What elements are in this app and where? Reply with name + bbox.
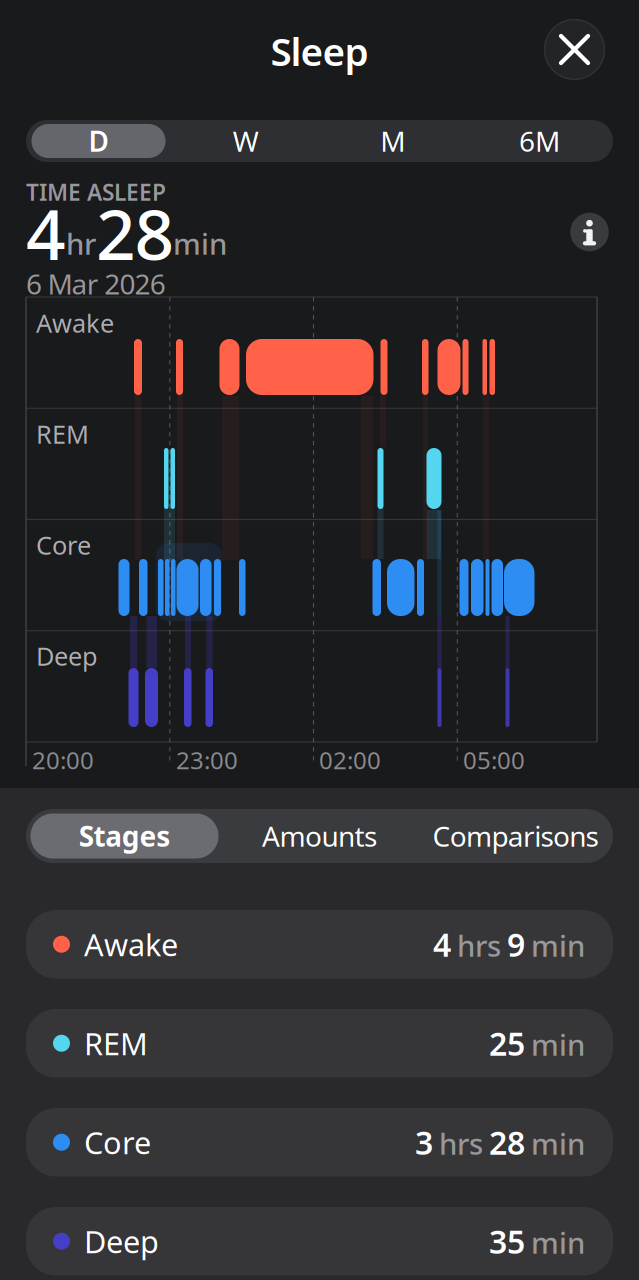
- button[interactable]: D: [28, 120, 168, 162]
- staticText: min: [531, 1025, 585, 1064]
- staticText: Comparisons: [432, 817, 598, 855]
- staticText: 23:00: [176, 744, 238, 776]
- staticText: Core: [36, 528, 91, 562]
- staticText: min: [531, 1223, 585, 1262]
- staticText: W: [233, 122, 259, 160]
- staticText: min: [531, 1124, 585, 1163]
- staticText: Amounts: [262, 817, 377, 855]
- staticText: 6M: [519, 122, 560, 160]
- button[interactable]: Info: [570, 213, 609, 251]
- staticText: min: [531, 926, 585, 965]
- staticText: TIME ASLEEP: [26, 177, 166, 207]
- staticText: 35: [489, 1220, 525, 1262]
- staticText: Awake: [36, 306, 114, 340]
- button[interactable]: W: [176, 120, 316, 162]
- staticText: Awake: [84, 924, 178, 965]
- button[interactable]: Close: [544, 19, 605, 80]
- staticText: 28: [96, 187, 174, 279]
- staticText: M: [380, 122, 405, 160]
- staticText: hrs: [439, 1124, 483, 1163]
- staticText: 3: [415, 1121, 433, 1163]
- staticText: 28: [489, 1121, 525, 1163]
- staticText: hrs: [457, 926, 501, 965]
- staticText: 6 Mar 2026: [26, 265, 166, 302]
- staticText: Deep: [36, 639, 98, 673]
- staticText: Core: [84, 1122, 151, 1163]
- button[interactable]: Amounts: [224, 809, 414, 863]
- staticText: REM: [84, 1023, 148, 1064]
- staticText: 25: [489, 1022, 525, 1064]
- button[interactable]: Comparisons: [410, 809, 620, 863]
- staticText: Sleep: [270, 25, 368, 77]
- staticText: REM: [36, 417, 89, 451]
- staticText: Stages: [79, 817, 170, 855]
- button[interactable]: M: [323, 120, 463, 162]
- button[interactable]: Stages: [29, 809, 219, 863]
- button[interactable]: 6M: [469, 120, 609, 162]
- staticText: 4: [26, 187, 66, 279]
- staticText: Deep: [84, 1221, 159, 1262]
- staticText: 20:00: [32, 744, 94, 776]
- staticText: min: [173, 224, 227, 263]
- staticText: hr: [66, 224, 96, 263]
- staticText: D: [88, 122, 108, 160]
- staticText: 4: [433, 923, 451, 965]
- staticText: 02:00: [319, 744, 381, 776]
- staticText: 9: [507, 923, 525, 965]
- staticText: 05:00: [463, 744, 525, 776]
